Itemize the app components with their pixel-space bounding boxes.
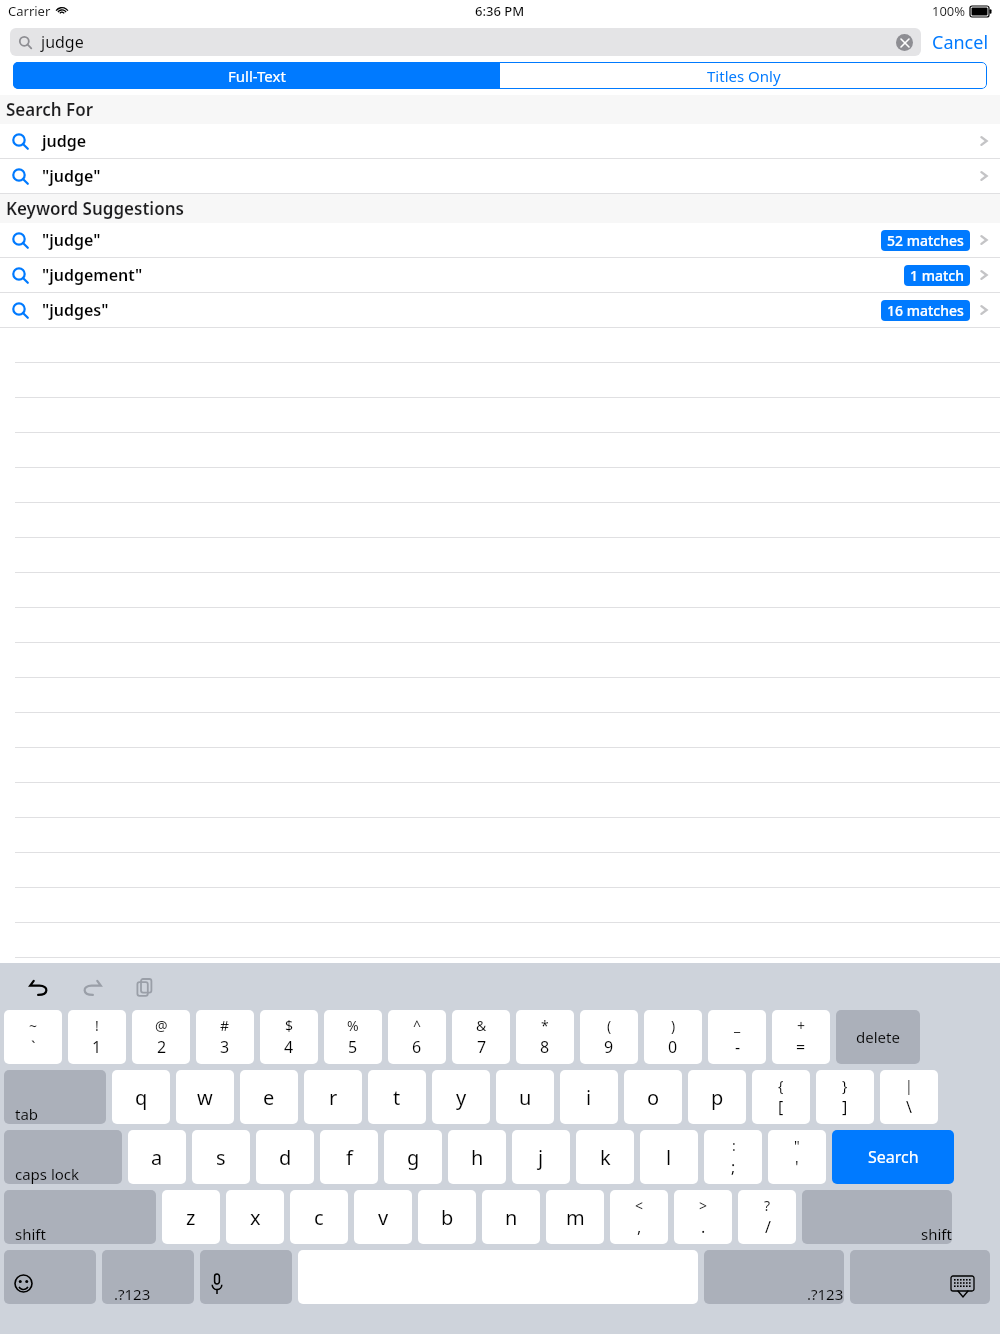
- staticText: *: [541, 1016, 549, 1035]
- button[interactable]: &: [452, 1010, 510, 1064]
- button[interactable]: {: [752, 1070, 810, 1124]
- button[interactable]: Redo: [75, 970, 109, 1004]
- button[interactable]: _: [708, 1010, 766, 1064]
- button[interactable]: g: [384, 1130, 442, 1184]
- staticText: 100%: [932, 2, 966, 20]
- staticText: 2: [157, 1036, 167, 1058]
- staticText: 0: [668, 1036, 678, 1058]
- staticText: .?123: [807, 1284, 844, 1304]
- button[interactable]: s: [192, 1130, 250, 1184]
- button[interactable]: <: [610, 1190, 668, 1244]
- button[interactable]: #: [196, 1010, 254, 1064]
- staticText: @: [155, 1016, 168, 1035]
- button[interactable]: tab: [4, 1070, 106, 1124]
- button[interactable]: f: [320, 1130, 378, 1184]
- button[interactable]: y: [432, 1070, 490, 1124]
- button[interactable]: b: [418, 1190, 476, 1244]
- button[interactable]: Dictate: [200, 1250, 292, 1304]
- button[interactable]: a: [128, 1130, 186, 1184]
- button[interactable]: ^: [388, 1010, 446, 1064]
- staticText: +: [797, 1016, 806, 1035]
- button[interactable]: ?: [738, 1190, 796, 1244]
- button[interactable]: @: [132, 1010, 190, 1064]
- button[interactable]: +: [772, 1010, 830, 1064]
- button[interactable]: delete: [836, 1010, 920, 1064]
- button[interactable]: o: [624, 1070, 682, 1124]
- button[interactable]: }: [816, 1070, 874, 1124]
- button[interactable]: k: [576, 1130, 634, 1184]
- button[interactable]: |: [880, 1070, 938, 1124]
- staticText: ]: [842, 1096, 848, 1118]
- staticText: x: [250, 1204, 261, 1231]
- button[interactable]: Cancel: [921, 26, 1000, 59]
- button[interactable]: caps lock: [4, 1130, 122, 1184]
- button[interactable]: x: [226, 1190, 284, 1244]
- button[interactable]: (: [580, 1010, 638, 1064]
- staticText: .?123: [114, 1284, 151, 1304]
- button[interactable]: Titles Only: [500, 62, 987, 89]
- button[interactable]: :: [704, 1130, 762, 1184]
- button[interactable]: c: [290, 1190, 348, 1244]
- button[interactable]: Emoji: [4, 1250, 96, 1304]
- staticText: ": [794, 1136, 800, 1155]
- button[interactable]: ): [644, 1010, 702, 1064]
- staticText: -: [735, 1036, 741, 1058]
- staticText: (: [607, 1016, 612, 1035]
- staticText: Carrier: [8, 2, 51, 20]
- button[interactable]: Search: [832, 1130, 954, 1184]
- button[interactable]: !: [68, 1010, 126, 1064]
- staticText: i: [586, 1084, 592, 1111]
- button[interactable]: .?123: [704, 1250, 844, 1304]
- button[interactable]: %: [324, 1010, 382, 1064]
- staticText: 4: [284, 1036, 294, 1058]
- button[interactable]: Paste: [128, 970, 162, 1004]
- staticText: b: [441, 1204, 454, 1231]
- button[interactable]: u: [496, 1070, 554, 1124]
- button[interactable]: "judgement": [0, 258, 1000, 293]
- staticText: c: [314, 1204, 324, 1231]
- button[interactable]: t: [368, 1070, 426, 1124]
- button[interactable]: h: [448, 1130, 506, 1184]
- button[interactable]: "judges": [0, 293, 1000, 328]
- button[interactable]: Full-Text: [13, 62, 500, 89]
- button[interactable]: e: [240, 1070, 298, 1124]
- button[interactable]: Hide keyboard: [850, 1250, 990, 1304]
- button[interactable]: >: [674, 1190, 732, 1244]
- button[interactable]: "judge": [0, 223, 1000, 258]
- button[interactable]: Clear search: [896, 34, 913, 51]
- button[interactable]: "judge": [0, 159, 1000, 194]
- staticText: 1 match: [910, 266, 964, 285]
- button[interactable]: ~: [4, 1010, 62, 1064]
- button[interactable]: n: [482, 1190, 540, 1244]
- button[interactable]: Undo: [22, 970, 56, 1004]
- button[interactable]: j: [512, 1130, 570, 1184]
- button[interactable]: r: [304, 1070, 362, 1124]
- button[interactable]: q: [112, 1070, 170, 1124]
- button[interactable]: z: [162, 1190, 220, 1244]
- button[interactable]: i: [560, 1070, 618, 1124]
- staticText: }: [842, 1076, 848, 1095]
- button[interactable]: d: [256, 1130, 314, 1184]
- button[interactable]: $: [260, 1010, 318, 1064]
- button[interactable]: *: [516, 1010, 574, 1064]
- staticText: "judge": [42, 165, 101, 187]
- button[interactable]: judge: [10, 28, 921, 56]
- button[interactable]: m: [546, 1190, 604, 1244]
- staticText: >: [699, 1196, 708, 1215]
- staticText: 6:36 PM: [475, 2, 525, 20]
- staticText: r: [329, 1084, 338, 1111]
- staticText: 1: [92, 1036, 102, 1058]
- button[interactable]: .?123: [102, 1250, 194, 1304]
- button[interactable]: shift: [802, 1190, 952, 1244]
- button[interactable]: p: [688, 1070, 746, 1124]
- button[interactable]: ": [768, 1130, 826, 1184]
- staticText: k: [600, 1144, 611, 1171]
- button[interactable]: l: [640, 1130, 698, 1184]
- staticText: 3: [220, 1036, 230, 1058]
- button[interactable]: judge: [0, 124, 1000, 159]
- button[interactable]: w: [176, 1070, 234, 1124]
- button[interactable]: v: [354, 1190, 412, 1244]
- staticText: ~: [29, 1016, 38, 1035]
- button[interactable]: shift: [4, 1190, 156, 1244]
